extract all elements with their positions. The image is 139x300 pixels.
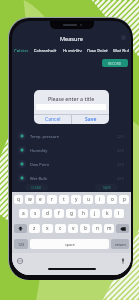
staticText: x	[46, 225, 49, 232]
button[interactable]: u	[83, 195, 93, 204]
button[interactable]: Dictate	[118, 256, 128, 266]
button[interactable]: 123	[14, 239, 28, 249]
button[interactable]: w	[25, 195, 34, 204]
staticText: j	[94, 210, 96, 217]
staticText: SAVE	[103, 185, 111, 190]
button[interactable]: More options	[120, 34, 127, 41]
staticText: l	[118, 210, 120, 217]
button[interactable]: i	[95, 195, 105, 204]
staticText: p	[123, 196, 126, 203]
staticText: u	[87, 196, 90, 203]
button[interactable]: o	[107, 195, 117, 204]
button[interactable]: Temp. pressure	[12, 129, 131, 143]
button[interactable]: t	[59, 195, 69, 204]
button[interactable]: n	[92, 224, 102, 233]
button[interactable]: Celsius	[13, 46, 30, 54]
staticText: space	[65, 242, 75, 247]
button[interactable]: Save	[72, 114, 109, 124]
staticText: Dew Point	[87, 48, 108, 52]
button[interactable]: Fahrenheit	[33, 46, 58, 54]
button[interactable]: CLEAR	[25, 184, 48, 191]
staticText: k	[106, 210, 109, 217]
staticText: y	[75, 196, 78, 203]
staticText: Measure	[60, 35, 83, 43]
staticText: q	[17, 196, 20, 203]
button[interactable]: Humidity	[62, 46, 83, 54]
button[interactable]: return	[111, 239, 129, 249]
button[interactable]: d	[42, 209, 52, 218]
button[interactable]: y	[71, 195, 81, 204]
staticText: Humidity	[30, 148, 48, 153]
button[interactable]: f	[54, 209, 64, 218]
button[interactable]: l	[114, 209, 124, 218]
button[interactable]: a	[19, 209, 28, 218]
staticText: 22.5	[117, 176, 125, 181]
staticText: r	[51, 196, 53, 203]
staticText: f	[58, 210, 60, 217]
staticText: g	[70, 210, 73, 217]
staticText: 22.5	[117, 134, 125, 139]
button[interactable]: x	[42, 224, 53, 233]
button[interactable]: Backspace	[116, 224, 129, 233]
button[interactable]: q	[14, 195, 23, 204]
staticText: Humidity	[63, 48, 82, 52]
staticText: v	[72, 225, 75, 232]
button[interactable]: Dew Point	[86, 46, 109, 54]
staticText: Save	[85, 116, 97, 123]
staticText: s	[34, 210, 37, 217]
staticText: 22.5	[117, 148, 125, 153]
button[interactable]: h	[78, 209, 88, 218]
staticText: w	[28, 196, 32, 203]
staticText: t	[63, 196, 65, 203]
staticText: Fahrenheit	[34, 48, 57, 52]
button[interactable]: j	[90, 209, 100, 218]
button[interactable]: RECORD	[102, 59, 128, 67]
staticText: Please enter a title	[48, 95, 95, 102]
button[interactable]: Wet Bulb	[12, 171, 131, 185]
staticText: Celsius	[14, 48, 29, 52]
staticText: a	[22, 210, 25, 217]
staticText: n	[96, 225, 99, 232]
button[interactable]: k	[102, 209, 112, 218]
staticText: d	[46, 210, 49, 217]
staticText: RECORD	[108, 61, 122, 66]
staticText: o	[111, 196, 114, 203]
button[interactable]: p	[119, 195, 129, 204]
staticText: m	[107, 225, 112, 232]
staticText: c	[59, 225, 62, 232]
button[interactable]: Cancel	[34, 114, 71, 124]
button[interactable]: b	[80, 224, 90, 233]
button[interactable]: m	[104, 224, 114, 233]
button[interactable]: s	[30, 209, 40, 218]
staticText: return	[115, 242, 126, 247]
button[interactable]: z	[29, 224, 40, 233]
staticText: h	[82, 210, 85, 217]
button[interactable]: SAVE	[95, 184, 118, 191]
staticText: z	[33, 225, 36, 232]
staticText: Wet Bulb	[30, 176, 47, 181]
button[interactable]: g	[66, 209, 76, 218]
staticText: b	[84, 225, 87, 232]
staticText: Dew Point	[30, 162, 50, 167]
staticText: 123	[18, 242, 25, 247]
staticText: e	[39, 196, 42, 203]
staticText: Temp. pressure	[30, 134, 59, 139]
button[interactable]: Change keyboard	[15, 256, 25, 266]
button[interactable]: space	[30, 239, 109, 249]
button[interactable]: Shift	[14, 224, 27, 233]
button[interactable]: r	[47, 195, 57, 204]
button[interactable]: Wet Bul	[112, 46, 130, 54]
staticText: CLEAR	[31, 185, 42, 190]
button[interactable]: e	[36, 195, 45, 204]
button[interactable]: Humidity	[12, 143, 131, 157]
staticText: 22.5	[117, 162, 125, 167]
button[interactable]: c	[55, 224, 66, 233]
staticText: i	[99, 196, 101, 203]
button[interactable]: v	[68, 224, 78, 233]
staticText: Wet Bul	[113, 48, 129, 52]
staticText: Cancel	[45, 116, 61, 123]
button[interactable]: Dew Point	[12, 157, 131, 171]
